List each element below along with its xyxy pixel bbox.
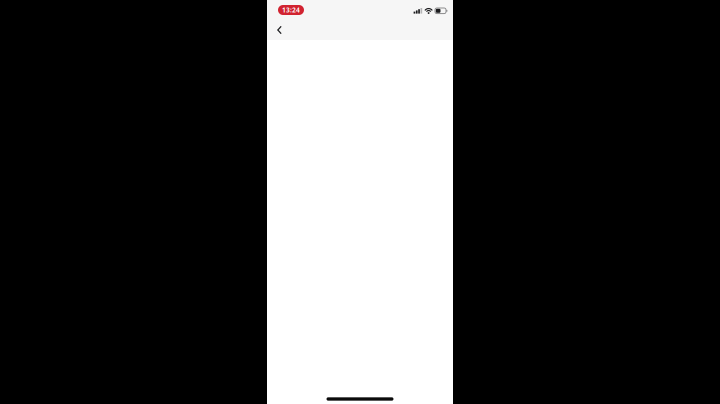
staticText: 13:24 bbox=[282, 6, 300, 14]
button[interactable]: Back bbox=[270, 20, 289, 40]
